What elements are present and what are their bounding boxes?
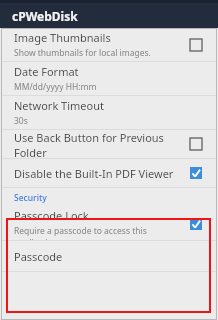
staticText: Image Thumbnails — [14, 30, 111, 45]
staticText: cPWebDisk — [12, 8, 78, 24]
staticText: Passcode Lock — [14, 208, 89, 223]
staticText: Require a passcode to access this applic… — [14, 225, 184, 240]
button[interactable]: Checked — [184, 161, 208, 185]
button[interactable]: Use Back Button for Previous Folder — [2, 130, 216, 158]
button[interactable]: Passcode Lock — [2, 208, 216, 240]
staticText: Disable the Built-In PDF Viewer — [14, 166, 174, 181]
staticText: Security — [14, 192, 47, 204]
staticText: Use Back Button for Previous Folder — [14, 130, 184, 158]
staticText: Passcode — [14, 249, 63, 264]
button[interactable]: Unchecked — [184, 132, 208, 156]
button[interactable]: Image Thumbnails — [2, 28, 216, 61]
staticText: Date Format — [14, 64, 79, 79]
staticText: Network Timeout — [14, 98, 104, 113]
button[interactable]: Unchecked — [184, 33, 208, 57]
button[interactable]: Checked — [184, 212, 208, 236]
button[interactable]: Passcode — [2, 241, 216, 271]
staticText: MM/dd/yyyy HH:mm — [14, 81, 97, 93]
button[interactable]: Date Format — [2, 62, 216, 95]
button[interactable]: Disable the Built-In PDF Viewer — [2, 159, 216, 187]
staticText: Show thumbnails for local images. — [14, 47, 151, 59]
staticText: 30s — [14, 115, 28, 127]
button[interactable]: Network Timeout — [2, 96, 216, 129]
